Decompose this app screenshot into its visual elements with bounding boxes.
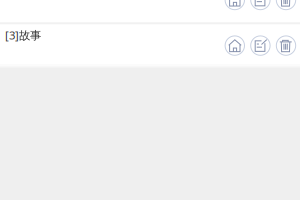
button[interactable]: Delete: [275, 35, 296, 56]
staticText: [3]故事: [5, 27, 41, 43]
button[interactable]: [3]故事: [0, 24, 300, 64]
button[interactable]: [2]前言: [0, 0, 300, 22]
button[interactable]: Home: [224, 0, 245, 10]
button[interactable]: Edit: [250, 0, 271, 10]
button[interactable]: Delete: [275, 0, 296, 10]
button[interactable]: Edit: [250, 35, 271, 56]
button[interactable]: Home: [224, 35, 245, 56]
